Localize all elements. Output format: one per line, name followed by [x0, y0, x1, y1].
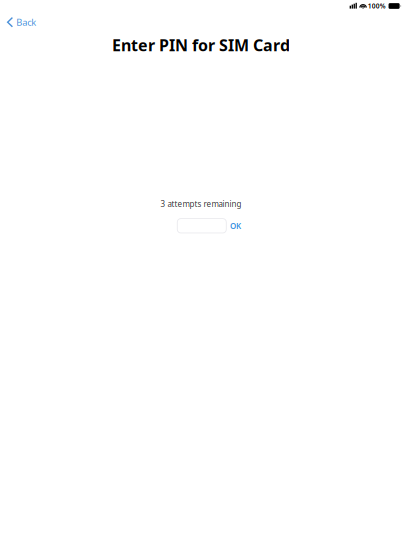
staticText: Back	[16, 16, 36, 28]
button[interactable]: PIN	[177, 219, 226, 233]
staticText: OK	[230, 220, 241, 231]
staticText: 100%	[368, 2, 386, 10]
staticText: 3 attempts remaining	[160, 199, 241, 209]
button[interactable]: Back	[0, 13, 41, 31]
button[interactable]: OK	[226, 217, 245, 234]
staticText: Enter PIN for SIM Card	[112, 34, 290, 56]
